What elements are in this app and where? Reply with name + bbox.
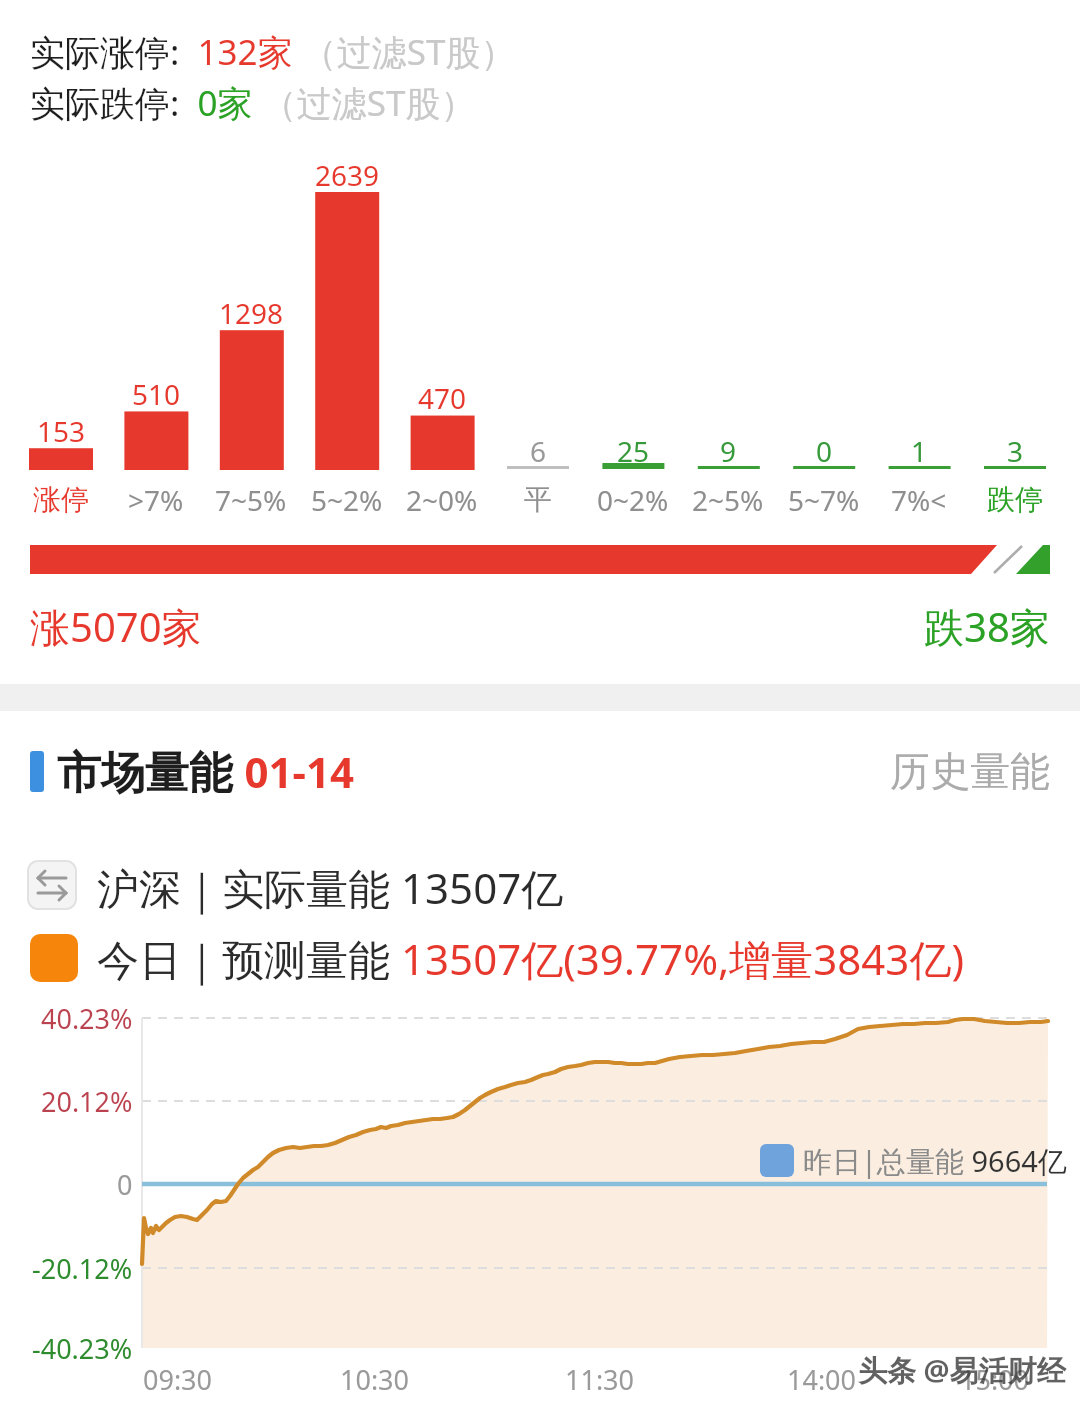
staticText: 6: [530, 432, 547, 470]
staticText: 25: [617, 432, 650, 470]
staticText: 153: [37, 412, 86, 450]
staticText: 3: [1007, 432, 1024, 470]
staticText: 10:30: [340, 1361, 410, 1398]
staticText: 跌38家: [924, 599, 1050, 654]
staticText: 实际跌停: 0家 （过滤ST股）: [30, 79, 476, 127]
button[interactable]: 历史量能: [750, 737, 1050, 805]
staticText: 9: [720, 432, 737, 470]
staticText: 40.23%: [41, 1000, 133, 1037]
staticText: 2639: [315, 156, 380, 194]
staticText: 今日｜预测量能 13507亿(39.77%,增量3843亿): [97, 930, 964, 987]
staticText: 5~7%: [788, 481, 860, 519]
staticText: 20.12%: [41, 1083, 133, 1120]
staticText: 平: [524, 482, 552, 517]
staticText: >7%: [128, 481, 184, 519]
staticText: 头条 @易活财经: [858, 1350, 1066, 1390]
staticText: 0~2%: [597, 481, 669, 519]
staticText: 510: [132, 375, 181, 413]
staticText: 1: [911, 432, 928, 470]
staticText: 跌停: [987, 482, 1043, 517]
staticText: 0: [816, 432, 833, 470]
staticText: 历史量能: [890, 746, 1050, 796]
staticText: 市场量能 01-14: [57, 741, 354, 801]
staticText: 1298: [219, 294, 284, 332]
staticText: 涨停: [33, 482, 89, 517]
staticText: 7~5%: [215, 481, 287, 519]
staticText: 7%<: [891, 481, 947, 519]
button[interactable]: 今日｜预测量能 13507亿(39.77%,增量3843亿): [97, 923, 1077, 994]
staticText: 15:00: [960, 1361, 1030, 1398]
staticText: 09:30: [143, 1361, 213, 1398]
staticText: 470: [418, 379, 467, 417]
staticText: 昨日|总量能 9664亿: [803, 1141, 1067, 1181]
staticText: 14:00: [787, 1361, 857, 1398]
staticText: 涨5070家: [30, 599, 202, 654]
staticText: 沪深｜实际量能 13507亿: [97, 859, 564, 916]
button[interactable]: 沪深｜实际量能 13507亿: [97, 852, 797, 923]
staticText: 5~2%: [311, 481, 383, 519]
staticText: 实际涨停: 132家 （过滤ST股）: [30, 28, 516, 76]
staticText: -40.23%: [32, 1330, 133, 1367]
staticText: 2~5%: [692, 481, 764, 519]
staticText: -20.12%: [32, 1250, 133, 1287]
staticText: 11:30: [565, 1361, 635, 1398]
staticText: 2~0%: [406, 481, 478, 519]
staticText: 0: [117, 1166, 133, 1203]
